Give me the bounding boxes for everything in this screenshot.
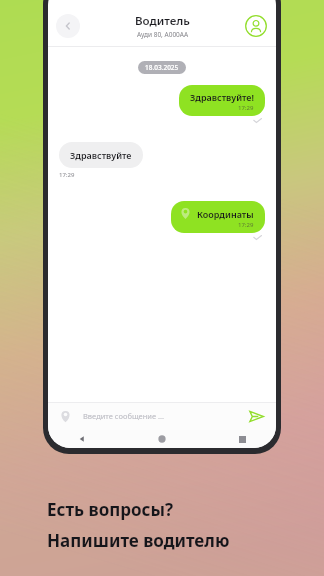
staticText: 18.03.2025 — [145, 63, 179, 72]
button[interactable]: Recents — [234, 431, 250, 447]
staticText: Напишите водителю — [47, 529, 230, 552]
button[interactable]: Attach location — [58, 409, 73, 424]
button[interactable]: Координаты — [171, 201, 265, 233]
button[interactable]: Home — [154, 431, 170, 447]
staticText: 17:29 — [238, 221, 254, 229]
button[interactable]: Здравствуйте! — [179, 85, 265, 116]
button[interactable]: Back — [56, 14, 80, 38]
staticText: Здравствуйте — [70, 149, 132, 161]
staticText: Координаты — [197, 208, 254, 220]
staticText: Есть вопросы? — [47, 498, 174, 521]
staticText: Водитель — [135, 13, 190, 29]
button[interactable]: Введите сообщение ... — [83, 411, 247, 421]
button[interactable]: Profile — [244, 14, 268, 38]
staticText: Здравствуйте! — [190, 91, 254, 103]
button[interactable]: Back — [74, 431, 90, 447]
staticText: 17:29 — [59, 171, 75, 179]
button[interactable]: Send — [247, 407, 266, 426]
staticText: Введите сообщение ... — [83, 411, 165, 421]
button[interactable]: Здравствуйте — [59, 142, 143, 168]
staticText: 17:29 — [238, 104, 254, 112]
staticText: Ауди 80, А000АА — [137, 30, 189, 39]
